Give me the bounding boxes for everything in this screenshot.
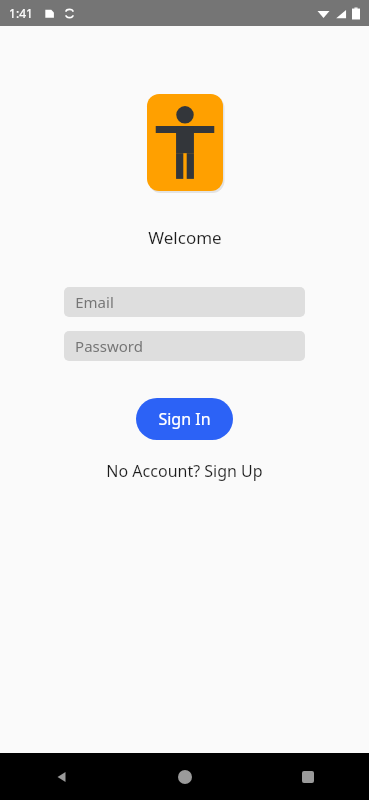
button[interactable]: Sign In xyxy=(136,398,233,440)
staticText: Sign In xyxy=(158,408,211,430)
staticText: 1:41 xyxy=(9,5,33,21)
staticText: No Account? Sign Up xyxy=(106,460,263,482)
staticText: Welcome xyxy=(148,226,222,249)
button[interactable]: Password xyxy=(64,331,305,361)
button[interactable]: Recent apps xyxy=(246,753,369,800)
button[interactable]: Email xyxy=(64,287,305,317)
button[interactable]: Back xyxy=(0,753,123,800)
button[interactable]: Home xyxy=(123,753,246,800)
button[interactable]: No Account? Sign Up xyxy=(98,456,271,486)
staticText: Password xyxy=(75,336,143,356)
staticText: Email xyxy=(75,292,114,312)
